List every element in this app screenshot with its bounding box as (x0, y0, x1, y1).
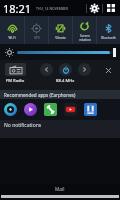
button[interactable]: Power (59, 63, 72, 76)
button[interactable]: Brightness slider (17, 46, 116, 58)
button[interactable]: Mail (0, 184, 120, 195)
button[interactable]: Video player (23, 102, 38, 117)
staticText: Wi-Fi (8, 36, 16, 40)
button[interactable]: GPS (25, 16, 48, 44)
staticText: No notifications (4, 122, 42, 129)
button[interactable]: Voice recorder (83, 102, 98, 117)
button[interactable]: Previous station (40, 63, 53, 76)
button[interactable]: Next station (78, 63, 91, 76)
button[interactable]: Quick settings grid (103, 0, 118, 16)
button[interactable]: Wi-Fi (0, 16, 24, 44)
button[interactable]: Vibrate (49, 16, 72, 44)
button[interactable]: Auto brightness (3, 46, 15, 58)
staticText: Screen rotation (79, 34, 91, 42)
staticText: Recommended apps (Earphones) (4, 92, 76, 98)
staticText: Bluetooth (101, 36, 116, 40)
button[interactable]: Close (102, 63, 115, 77)
staticText: GPS (34, 36, 40, 40)
button[interactable]: Settings (87, 0, 102, 16)
button[interactable]: Phone (43, 102, 58, 117)
button[interactable]: Music player (3, 102, 18, 117)
staticText: 18:21 (3, 1, 32, 16)
button[interactable]: Bluetooth (97, 16, 120, 44)
staticText: Vibrate (55, 36, 66, 40)
button[interactable]: YouTube (63, 102, 78, 117)
button[interactable]: FM Radio (3, 63, 28, 84)
staticText: Mail (55, 186, 65, 193)
button[interactable]: Screen rotation (73, 16, 96, 44)
staticText: THU, 14 NOVEMBER (36, 6, 69, 11)
staticText: 88.4 MHz (56, 78, 75, 84)
staticText: FM Radio (6, 78, 25, 84)
